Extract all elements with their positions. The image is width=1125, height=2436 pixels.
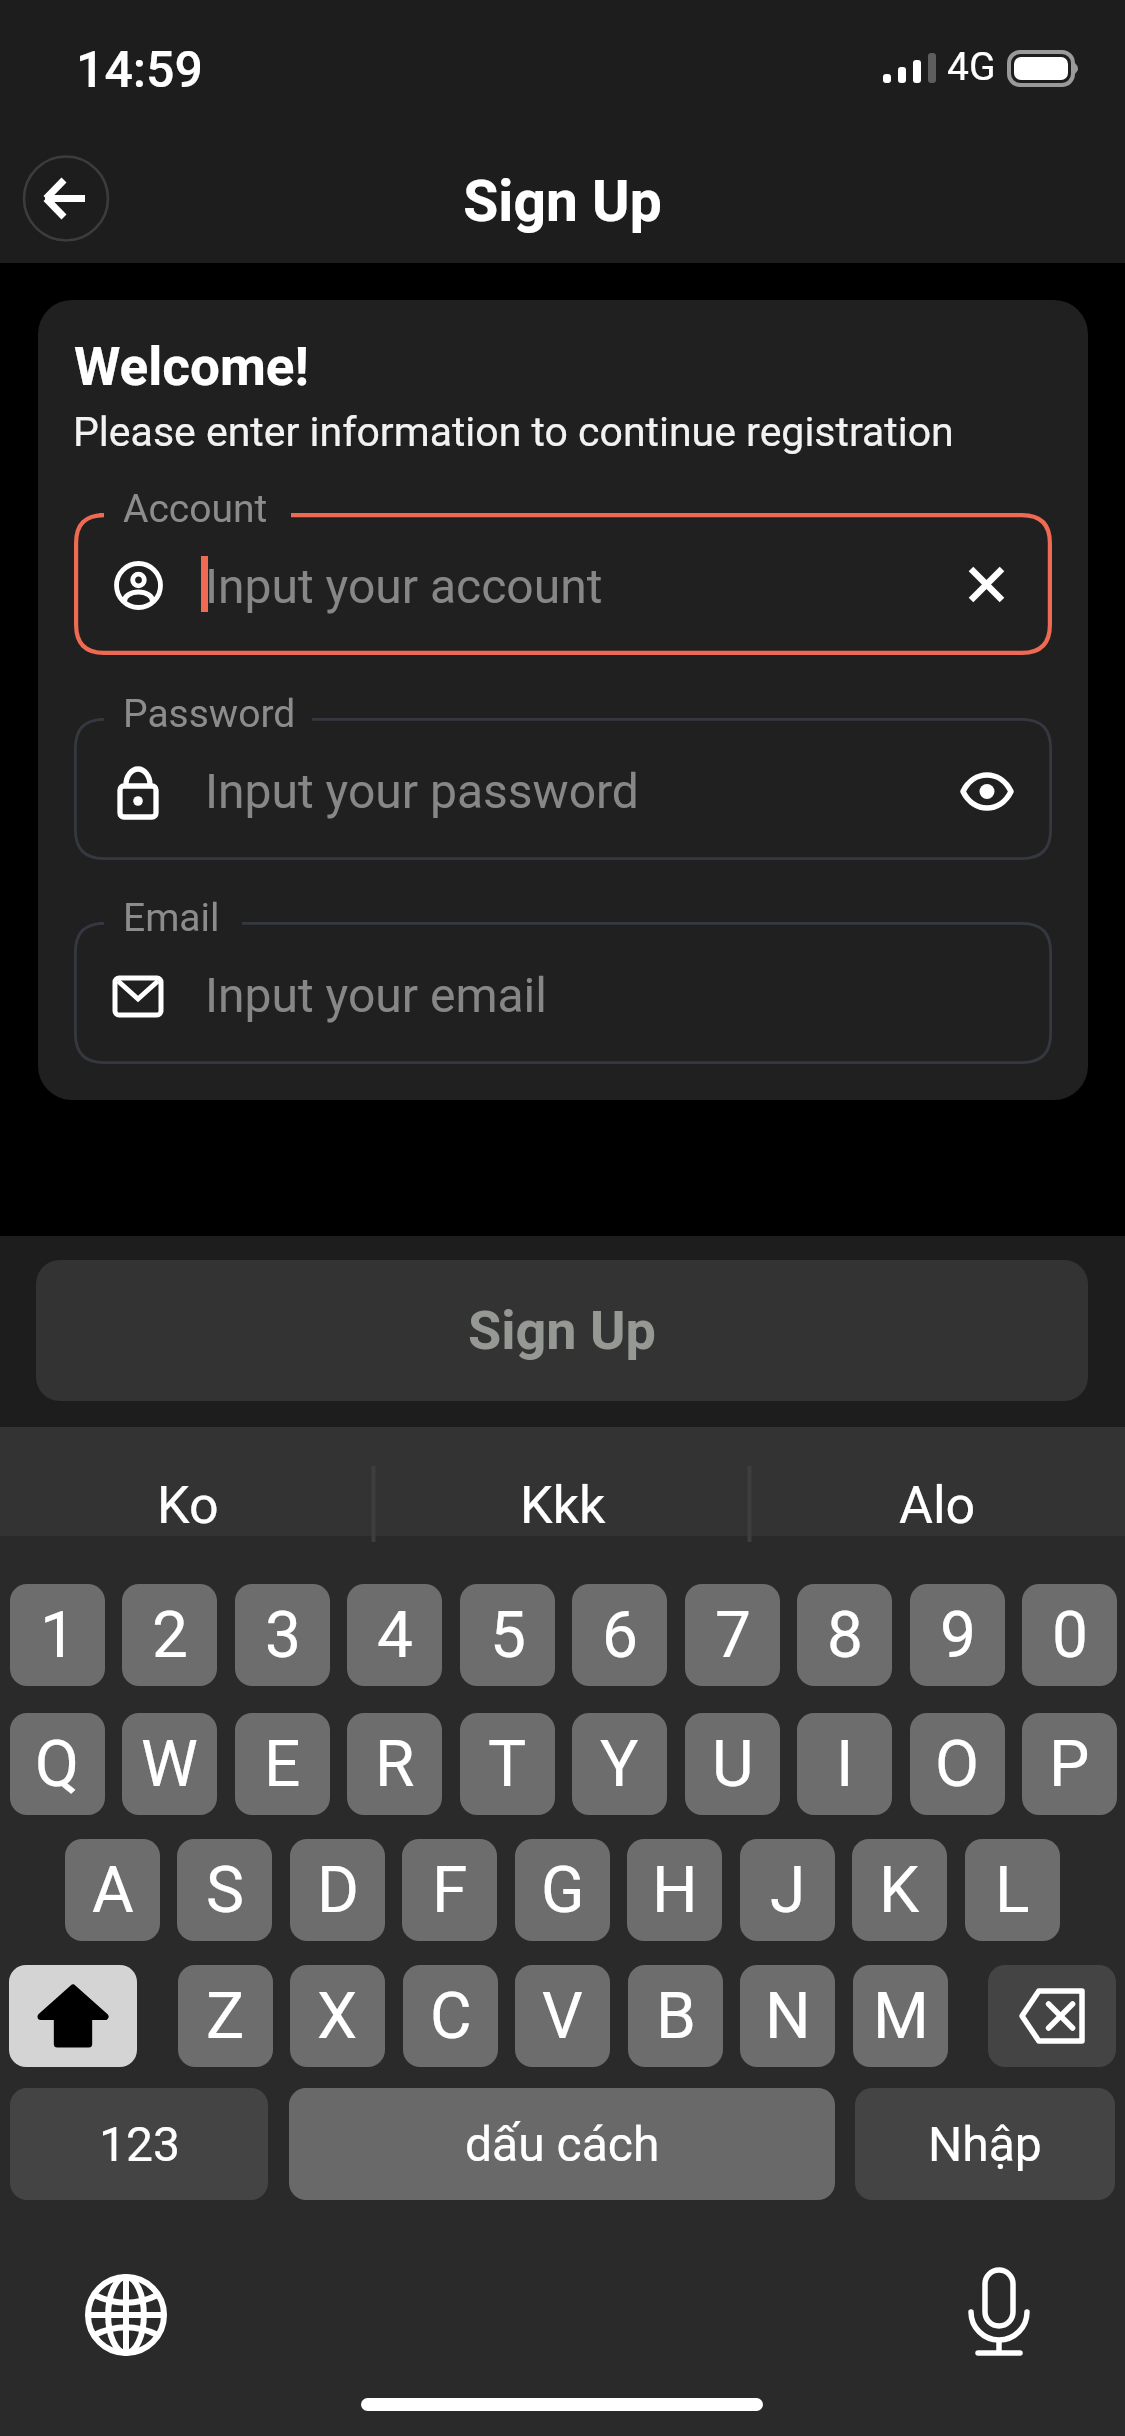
button[interactable]: Voice input bbox=[962, 2264, 1036, 2360]
button[interactable]: U bbox=[685, 1713, 780, 1815]
staticText: X bbox=[317, 1979, 358, 2054]
staticText: Y bbox=[600, 1727, 639, 1802]
staticText: F bbox=[432, 1853, 468, 1928]
button[interactable]: Shift bbox=[9, 1965, 137, 2067]
button[interactable]: Y bbox=[572, 1713, 667, 1815]
button[interactable]: A bbox=[65, 1839, 160, 1941]
staticText: H bbox=[652, 1853, 698, 1928]
button[interactable]: L bbox=[965, 1839, 1060, 1941]
button[interactable]: R bbox=[347, 1713, 442, 1815]
staticText: C bbox=[430, 1979, 472, 2054]
button[interactable]: D bbox=[290, 1839, 385, 1941]
button[interactable]: 4 bbox=[347, 1584, 442, 1686]
staticText: 7 bbox=[715, 1598, 751, 1673]
staticText: 14:59 bbox=[76, 41, 203, 100]
button[interactable]: T bbox=[460, 1713, 555, 1815]
button[interactable]: 5 bbox=[460, 1584, 555, 1686]
staticText: Email bbox=[123, 895, 220, 941]
staticText: Q bbox=[35, 1727, 80, 1802]
staticText: J bbox=[770, 1853, 806, 1928]
staticText: T bbox=[488, 1727, 527, 1802]
staticText: Password bbox=[123, 691, 296, 737]
button[interactable]: Nhập bbox=[855, 2088, 1115, 2200]
button[interactable]: F bbox=[402, 1839, 497, 1941]
button[interactable]: Ko bbox=[0, 1427, 375, 1536]
staticText: 3 bbox=[265, 1598, 301, 1673]
button[interactable]: V bbox=[515, 1965, 610, 2067]
staticText: Input your password bbox=[205, 763, 639, 819]
staticText: 2 bbox=[152, 1598, 188, 1673]
staticText: Alo bbox=[899, 1475, 976, 1536]
staticText: S bbox=[206, 1853, 244, 1928]
button[interactable]: 2 bbox=[122, 1584, 217, 1686]
button[interactable]: E bbox=[235, 1713, 330, 1815]
staticText: Kkk bbox=[520, 1475, 606, 1536]
button[interactable]: Z bbox=[178, 1965, 273, 2067]
button[interactable]: Account bbox=[74, 513, 1052, 655]
staticText: N bbox=[765, 1979, 811, 2054]
staticText: 4G bbox=[947, 44, 996, 90]
staticText: U bbox=[712, 1727, 754, 1802]
button[interactable]: N bbox=[740, 1965, 835, 2067]
staticText: dấu cách bbox=[465, 2116, 660, 2172]
staticText: Ko bbox=[157, 1475, 219, 1536]
button[interactable]: Backspace bbox=[988, 1965, 1116, 2067]
staticText: Account bbox=[123, 486, 268, 532]
button[interactable]: Clear bbox=[957, 555, 1017, 615]
button[interactable]: 1 bbox=[10, 1584, 105, 1686]
button[interactable]: O bbox=[910, 1713, 1005, 1815]
staticText: G bbox=[541, 1853, 585, 1928]
button[interactable]: 123 bbox=[10, 2088, 268, 2200]
staticText: 0 bbox=[1052, 1598, 1088, 1673]
button[interactable]: dấu cách bbox=[289, 2088, 835, 2200]
button[interactable]: S bbox=[177, 1839, 272, 1941]
staticText: 4 bbox=[377, 1598, 413, 1673]
staticText: B bbox=[656, 1979, 696, 2054]
staticText: 5 bbox=[490, 1598, 526, 1673]
staticText: P bbox=[1049, 1727, 1090, 1802]
staticText: 123 bbox=[99, 2116, 180, 2172]
button[interactable]: 3 bbox=[235, 1584, 330, 1686]
staticText: Z bbox=[206, 1979, 245, 2054]
button[interactable]: Alo bbox=[750, 1427, 1125, 1536]
button[interactable]: 9 bbox=[910, 1584, 1005, 1686]
button[interactable]: Kkk bbox=[375, 1427, 750, 1536]
button[interactable]: P bbox=[1022, 1713, 1117, 1815]
staticText: O bbox=[935, 1727, 980, 1802]
staticText: 6 bbox=[602, 1598, 638, 1673]
button[interactable]: Q bbox=[10, 1713, 105, 1815]
staticText: L bbox=[995, 1853, 1030, 1928]
button[interactable]: I bbox=[797, 1713, 892, 1815]
button[interactable]: Show password bbox=[957, 760, 1017, 820]
staticText: D bbox=[317, 1853, 359, 1928]
button[interactable]: Password bbox=[74, 718, 1052, 860]
button[interactable]: 7 bbox=[685, 1584, 780, 1686]
button[interactable]: 8 bbox=[797, 1584, 892, 1686]
staticText: V bbox=[542, 1979, 583, 2054]
staticText: Input your email bbox=[205, 967, 547, 1023]
button[interactable]: H bbox=[627, 1839, 722, 1941]
button[interactable]: Sign Up bbox=[36, 1260, 1088, 1401]
button[interactable]: G bbox=[515, 1839, 610, 1941]
staticText: 8 bbox=[827, 1598, 863, 1673]
staticText: R bbox=[375, 1727, 415, 1802]
button[interactable]: M bbox=[853, 1965, 948, 2067]
button[interactable]: 6 bbox=[572, 1584, 667, 1686]
button[interactable]: Back bbox=[22, 154, 110, 242]
button[interactable]: 0 bbox=[1022, 1584, 1117, 1686]
staticText: E bbox=[264, 1727, 301, 1802]
staticText: Please enter information to continue reg… bbox=[73, 408, 954, 456]
button[interactable]: X bbox=[290, 1965, 385, 2067]
button[interactable]: K bbox=[852, 1839, 947, 1941]
button[interactable]: Change keyboard bbox=[85, 2274, 167, 2356]
staticText: 1 bbox=[40, 1598, 76, 1673]
button[interactable]: W bbox=[122, 1713, 217, 1815]
staticText: Input your account bbox=[205, 558, 603, 614]
button[interactable]: C bbox=[403, 1965, 498, 2067]
button[interactable]: B bbox=[628, 1965, 723, 2067]
staticText: Welcome! bbox=[74, 336, 309, 398]
staticText: Nhập bbox=[928, 2116, 1042, 2172]
button[interactable]: Email bbox=[74, 922, 1052, 1064]
staticText: A bbox=[92, 1853, 134, 1928]
button[interactable]: J bbox=[740, 1839, 835, 1941]
